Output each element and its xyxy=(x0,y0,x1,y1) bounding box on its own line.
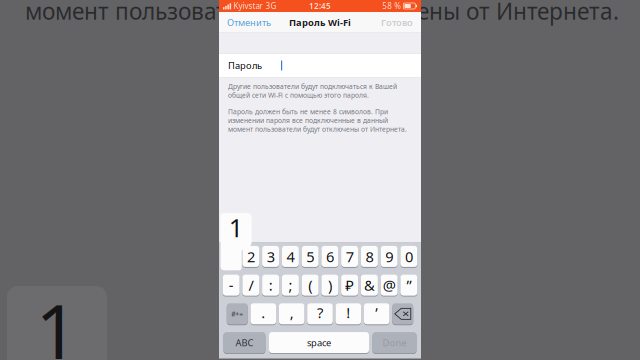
staticText: ) xyxy=(328,275,332,295)
button[interactable]: ) xyxy=(321,274,338,296)
staticText: Другие пользователи будут подключаться к… xyxy=(228,82,397,91)
button[interactable]: 0 xyxy=(400,245,417,267)
staticText: @ xyxy=(383,275,396,295)
staticText: Отменить xyxy=(227,16,271,29)
button[interactable]: ( xyxy=(302,274,319,296)
button[interactable]: #+= xyxy=(227,303,248,325)
button[interactable]: / xyxy=(242,274,259,296)
button[interactable]: 8 xyxy=(361,245,378,267)
staticText: 12:45 xyxy=(309,1,331,11)
staticText: Пароль xyxy=(228,59,262,72)
staticText: ’ xyxy=(375,303,378,322)
button[interactable]: : xyxy=(262,274,279,296)
staticText: / xyxy=(248,275,253,295)
staticText: - xyxy=(229,275,234,295)
button[interactable]: 5 xyxy=(302,245,319,267)
button[interactable]: ! xyxy=(336,303,361,325)
staticText: : xyxy=(269,275,273,295)
staticText: ABC xyxy=(235,336,253,349)
staticText: 1 xyxy=(35,280,78,360)
button[interactable]: 4 xyxy=(282,245,299,267)
staticText: общей сети Wi-Fi с помощью этого пароля. xyxy=(228,91,369,99)
button[interactable]: space xyxy=(269,332,369,353)
staticText: Готово xyxy=(381,16,413,29)
button[interactable]: ABC xyxy=(223,332,265,353)
staticText: момент пользователи будут отключены от И… xyxy=(228,125,407,134)
staticText: Пароль должен быть не менее 8 символов. … xyxy=(228,107,388,116)
button[interactable]: ; xyxy=(282,274,299,296)
staticText: 1 xyxy=(229,211,243,244)
staticText: момент пользователи будут отключены от И… xyxy=(25,0,619,26)
button[interactable]: 3 xyxy=(262,245,279,267)
staticText: ( xyxy=(308,275,312,295)
button[interactable]: Отменить xyxy=(219,12,279,33)
staticText: 7 xyxy=(346,247,354,266)
staticText: Пароль Wi-Fi xyxy=(289,16,351,29)
staticText: #+= xyxy=(231,309,243,318)
staticText: & xyxy=(364,275,375,295)
button[interactable]: - xyxy=(223,274,240,296)
staticText: изменении пароля все подключенные в данн… xyxy=(228,116,388,125)
staticText: 5 xyxy=(306,247,314,266)
staticText: , xyxy=(290,303,294,322)
button[interactable]: ” xyxy=(400,274,417,296)
button[interactable]: ’ xyxy=(364,303,389,325)
button[interactable]: Done xyxy=(372,332,416,353)
staticText: Done xyxy=(382,336,406,349)
staticText: 9 xyxy=(385,247,393,266)
staticText: ” xyxy=(406,275,411,295)
staticText: 4 xyxy=(286,247,294,266)
staticText: space xyxy=(307,336,331,349)
button[interactable]: 6 xyxy=(321,245,338,267)
staticText: 3 xyxy=(267,247,275,266)
staticText: 3G xyxy=(265,1,276,11)
button[interactable]: 9 xyxy=(381,245,398,267)
staticText: Kyivstar xyxy=(233,1,262,11)
button[interactable]: @ xyxy=(381,274,398,296)
staticText: . xyxy=(261,303,265,322)
staticText: ₽ xyxy=(345,275,354,295)
button[interactable]: ₽ xyxy=(341,274,358,296)
button[interactable]: ? xyxy=(307,303,333,325)
button[interactable]: , xyxy=(279,303,304,325)
button[interactable]: 2 xyxy=(242,245,259,267)
staticText: 6 xyxy=(326,247,334,266)
staticText: 2 xyxy=(247,247,255,266)
staticText: ! xyxy=(346,303,350,322)
button[interactable]: Backspace xyxy=(392,303,413,325)
button[interactable]: 7 xyxy=(341,245,358,267)
staticText: ; xyxy=(288,275,292,295)
button[interactable]: & xyxy=(361,274,378,296)
staticText: ? xyxy=(317,303,323,322)
staticText: 8 xyxy=(365,247,373,266)
staticText: 58 % xyxy=(382,1,401,11)
button[interactable]: Готово xyxy=(373,12,421,33)
button[interactable]: . xyxy=(250,303,276,325)
staticText: 0 xyxy=(405,247,413,266)
